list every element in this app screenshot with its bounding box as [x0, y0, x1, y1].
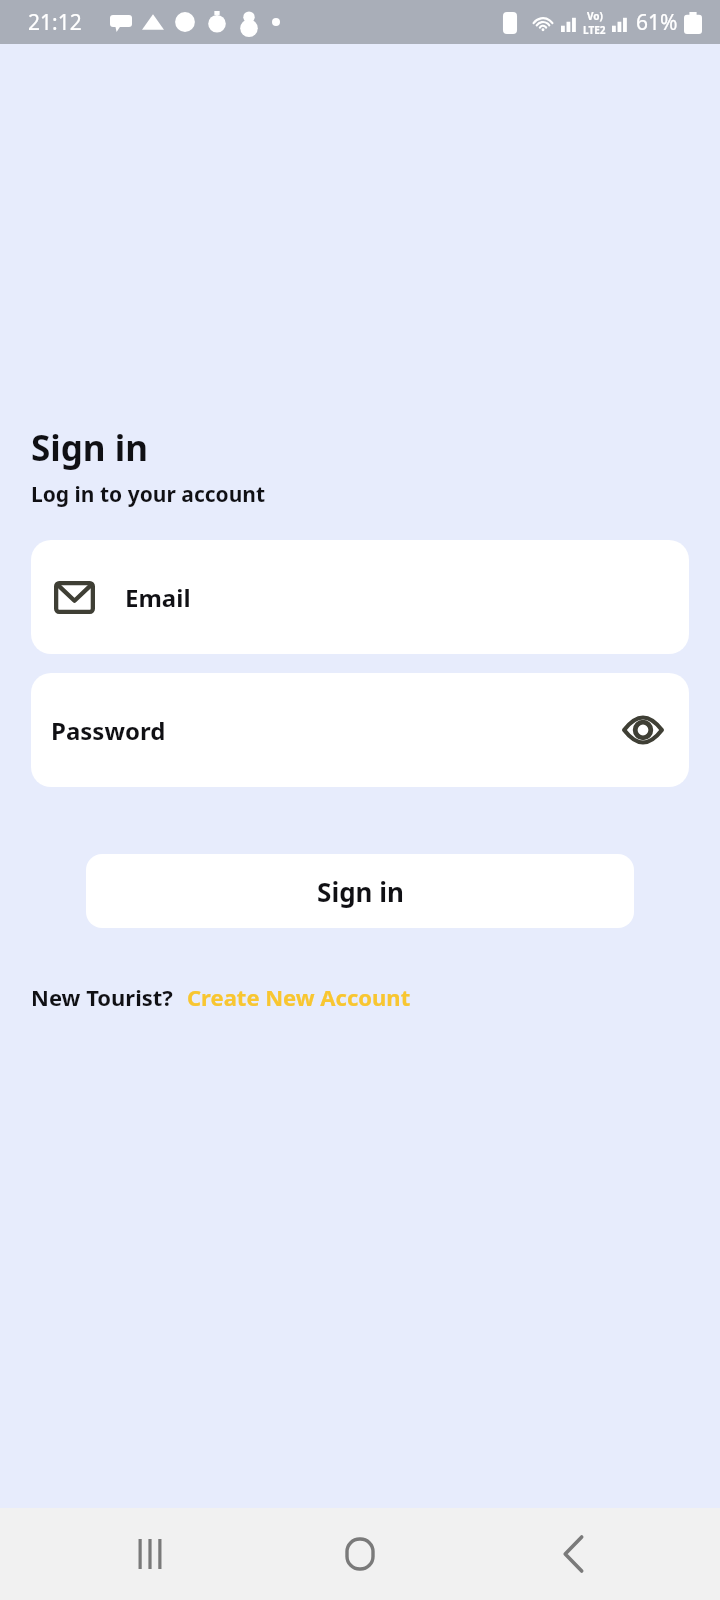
staticText: Password — [51, 714, 166, 747]
button[interactable]: Sign in — [86, 854, 634, 928]
button[interactable]: Home — [324, 1518, 396, 1590]
staticText: LTE2 — [583, 23, 606, 37]
staticText: 61% — [636, 8, 678, 37]
staticText: Sign in — [31, 424, 148, 472]
staticText: Sign in — [317, 874, 404, 909]
button[interactable]: Password — [31, 673, 689, 787]
staticText: New Tourist? — [31, 982, 173, 1012]
button[interactable]: Recent apps — [114, 1518, 186, 1590]
staticText: 21:12 — [28, 8, 82, 37]
staticText: Vo) — [587, 9, 603, 23]
staticText: Create New Account — [187, 982, 411, 1012]
staticText: Log in to your account — [31, 480, 266, 509]
staticText: Email — [125, 581, 191, 614]
button[interactable]: Create New Account — [187, 982, 411, 1012]
button[interactable]: Back — [538, 1518, 610, 1590]
button[interactable]: Email — [31, 540, 689, 654]
button[interactable]: Show password — [619, 706, 667, 754]
